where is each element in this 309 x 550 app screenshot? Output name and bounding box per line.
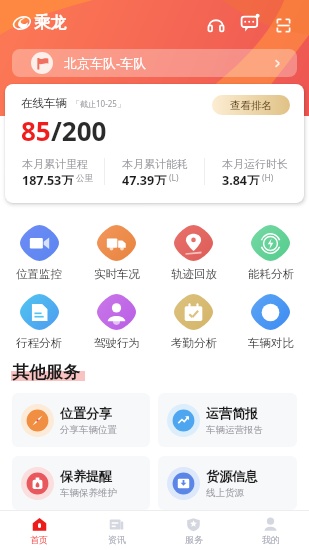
staticText: 服务: [185, 534, 203, 545]
button[interactable]: 乘龙: [13, 13, 66, 33]
button[interactable]: 保养提醒: [12, 456, 150, 510]
staticText: (H): [262, 172, 274, 184]
button[interactable]: Scan: [270, 10, 296, 36]
staticText: 在线车辆: [21, 96, 67, 110]
staticText: 运营简报: [206, 405, 258, 421]
staticText: 我的: [262, 534, 280, 545]
staticText: 保养提醒: [60, 468, 112, 484]
staticText: 分享车辆位置: [60, 424, 117, 436]
button[interactable]: 北京车队-车队: [12, 49, 297, 77]
staticText: 实时车况: [94, 267, 140, 281]
button[interactable]: 我的: [232, 511, 309, 550]
staticText: 货源信息: [206, 468, 258, 484]
button[interactable]: 运营简报: [158, 393, 297, 447]
button[interactable]: Customer service: [203, 10, 229, 36]
button[interactable]: 轨迹回放: [155, 225, 232, 281]
staticText: 车辆运营报告: [206, 424, 263, 436]
button[interactable]: 位置分享: [12, 393, 150, 447]
staticText: 47.39万: [122, 172, 167, 185]
staticText: (L): [169, 172, 179, 184]
button[interactable]: 首页: [0, 511, 78, 550]
button[interactable]: 驾驶行为: [78, 294, 155, 350]
staticText: 线上货源: [206, 487, 244, 499]
staticText: 北京车队-车队: [64, 54, 147, 72]
button[interactable]: 车辆对比: [232, 294, 309, 350]
button[interactable]: 查看排名: [212, 95, 290, 115]
staticText: 乘龙: [34, 13, 66, 33]
staticText: 187.53万: [22, 172, 74, 185]
button[interactable]: 服务: [155, 511, 232, 550]
staticText: 本月运行时长: [222, 157, 288, 171]
button[interactable]: 位置监控: [0, 225, 78, 281]
staticText: 考勤分析: [171, 336, 217, 350]
button[interactable]: 资讯: [78, 511, 155, 550]
staticText: 车辆对比: [248, 336, 294, 350]
staticText: 资讯: [108, 534, 126, 545]
button[interactable]: 货源信息: [158, 456, 297, 510]
staticText: 本月累计里程: [22, 157, 88, 171]
staticText: 其他服务: [12, 362, 80, 382]
button[interactable]: 考勤分析: [155, 294, 232, 350]
staticText: 位置监控: [16, 267, 62, 281]
staticText: 位置分享: [60, 405, 112, 421]
staticText: 查看排名: [230, 99, 272, 112]
staticText: 3.84万: [222, 172, 260, 185]
staticText: 车辆保养维护: [60, 487, 117, 499]
staticText: 公里: [76, 173, 93, 184]
staticText: 本月累计能耗: [122, 157, 188, 171]
staticText: 85: [21, 113, 51, 148]
button[interactable]: 能耗分析: [232, 225, 309, 281]
staticText: 「截止10-25」: [72, 98, 125, 109]
staticText: /200: [51, 113, 107, 148]
staticText: 首页: [30, 534, 48, 545]
staticText: 能耗分析: [248, 267, 294, 281]
staticText: 驾驶行为: [94, 336, 140, 350]
staticText: 行程分析: [16, 336, 62, 350]
button[interactable]: 行程分析: [0, 294, 78, 350]
button[interactable]: 实时车况: [78, 225, 155, 281]
staticText: 轨迹回放: [171, 267, 217, 281]
button[interactable]: Messages: [237, 10, 263, 36]
